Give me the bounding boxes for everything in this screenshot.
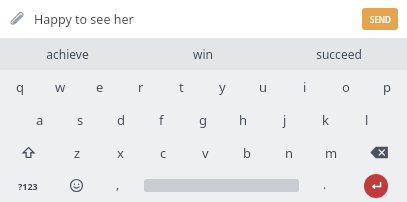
staticText: ?123 xyxy=(18,180,38,192)
button[interactable]: , xyxy=(98,169,137,202)
staticText: g xyxy=(199,111,207,129)
staticText: v xyxy=(202,144,209,162)
button[interactable]: q xyxy=(0,70,40,103)
staticText: a xyxy=(36,111,44,129)
button[interactable]: z xyxy=(56,136,99,169)
button[interactable]: i xyxy=(284,70,325,103)
staticText: y xyxy=(219,78,226,96)
staticText: , xyxy=(116,176,120,192)
staticText: t xyxy=(179,78,184,96)
staticText: x xyxy=(117,144,124,162)
staticText: k xyxy=(322,111,329,129)
button[interactable]: k xyxy=(305,103,346,136)
staticText: p xyxy=(383,78,391,96)
staticText: . xyxy=(323,176,327,192)
button[interactable]: achieve xyxy=(0,38,135,70)
staticText: j xyxy=(283,111,287,129)
button[interactable]: x xyxy=(99,136,142,169)
button[interactable]: . xyxy=(305,169,344,202)
button[interactable]: m xyxy=(310,136,352,169)
button[interactable]: d xyxy=(100,103,141,136)
staticText: SEND xyxy=(370,14,391,25)
staticText: z xyxy=(74,144,81,162)
button[interactable]: c xyxy=(142,136,184,169)
button[interactable]: b xyxy=(226,136,268,169)
button[interactable]: v xyxy=(184,136,226,169)
staticText: o xyxy=(342,78,350,96)
button[interactable]: win xyxy=(135,38,271,70)
staticText: w xyxy=(55,78,66,96)
button[interactable]: e xyxy=(80,70,120,103)
staticText: r xyxy=(138,78,144,96)
staticText: l xyxy=(365,111,369,129)
button[interactable]: o xyxy=(325,70,366,103)
button[interactable]: Attach file xyxy=(0,2,34,36)
button[interactable]: a xyxy=(20,103,60,136)
staticText: d xyxy=(117,111,125,129)
button[interactable]: f xyxy=(141,103,182,136)
button[interactable]: r xyxy=(120,70,161,103)
button[interactable]: g xyxy=(182,103,223,136)
staticText: m xyxy=(325,144,338,162)
staticText: win xyxy=(193,46,213,62)
staticText: c xyxy=(160,144,167,162)
button[interactable]: succeed xyxy=(271,38,407,70)
button[interactable]: u xyxy=(243,70,284,103)
staticText: Happy to see her xyxy=(34,11,134,28)
staticText: b xyxy=(243,144,251,162)
staticText: i xyxy=(303,78,307,96)
button[interactable]: Shift xyxy=(0,136,56,169)
button[interactable]: l xyxy=(346,103,387,136)
button[interactable]: Emoji xyxy=(55,169,98,202)
staticText: n xyxy=(285,144,294,162)
button[interactable]: t xyxy=(161,70,202,103)
button[interactable]: ?123 xyxy=(0,169,55,202)
button[interactable]: n xyxy=(268,136,310,169)
staticText: s xyxy=(77,111,84,129)
staticText: q xyxy=(16,78,24,96)
staticText: e xyxy=(96,78,104,96)
button[interactable]: h xyxy=(223,103,264,136)
staticText: achieve xyxy=(46,46,89,62)
staticText: succeed xyxy=(316,46,362,62)
staticText: f xyxy=(159,111,164,129)
button[interactable]: p xyxy=(366,70,407,103)
button[interactable]: Backspace xyxy=(352,136,407,169)
button[interactable]: Enter xyxy=(344,169,407,202)
button[interactable]: w xyxy=(40,70,80,103)
button[interactable]: y xyxy=(202,70,243,103)
staticText: u xyxy=(259,78,268,96)
button[interactable] xyxy=(137,169,305,202)
button[interactable]: j xyxy=(264,103,305,136)
staticText: h xyxy=(239,111,248,129)
button[interactable]: SEND xyxy=(362,8,398,30)
button[interactable]: s xyxy=(60,103,100,136)
